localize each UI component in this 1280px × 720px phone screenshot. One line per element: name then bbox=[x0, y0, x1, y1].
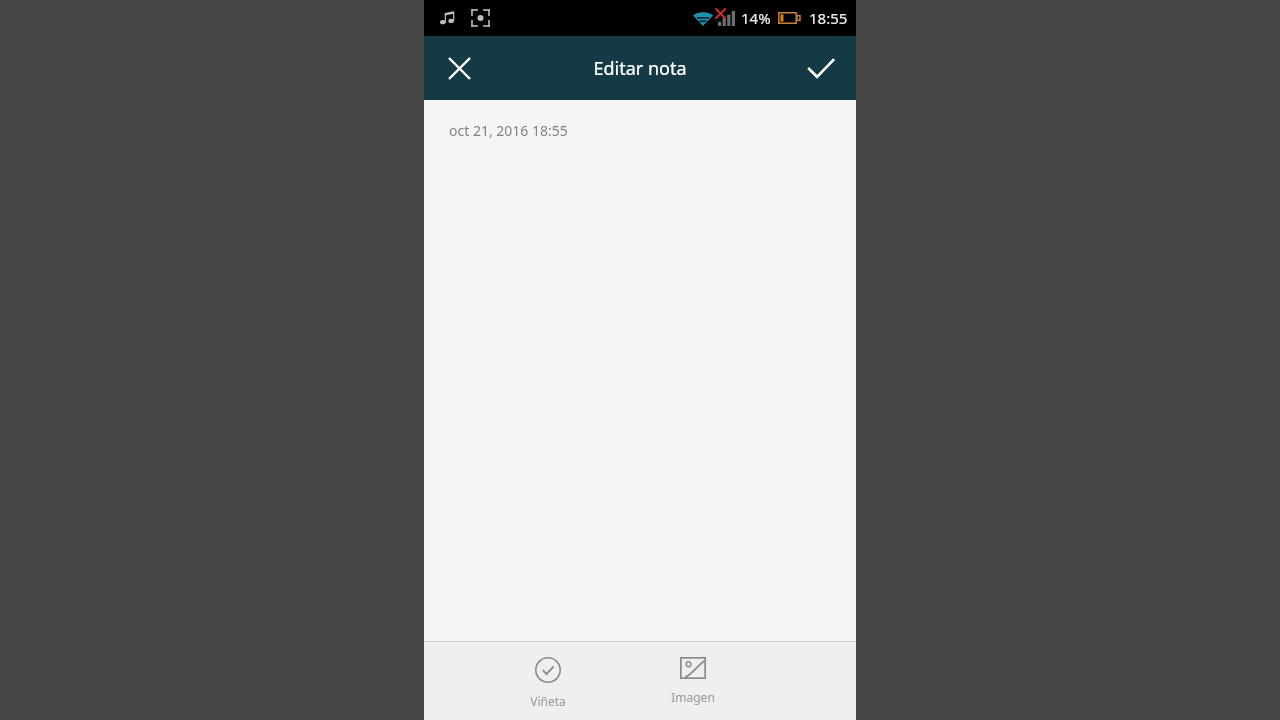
button[interactable]: Imagen bbox=[625, 655, 761, 707]
button[interactable]: Viñeta bbox=[480, 655, 616, 711]
button[interactable]: Cerrar bbox=[431, 40, 487, 96]
staticText: 18:55 bbox=[809, 8, 848, 28]
staticText: oct 21, 2016 18:55 bbox=[449, 121, 568, 140]
staticText: Viñeta bbox=[530, 693, 566, 709]
staticText: Imagen bbox=[671, 689, 715, 705]
button[interactable]: Guardar bbox=[793, 40, 849, 96]
staticText: 14% bbox=[741, 8, 771, 28]
staticText: Editar nota bbox=[593, 56, 687, 81]
